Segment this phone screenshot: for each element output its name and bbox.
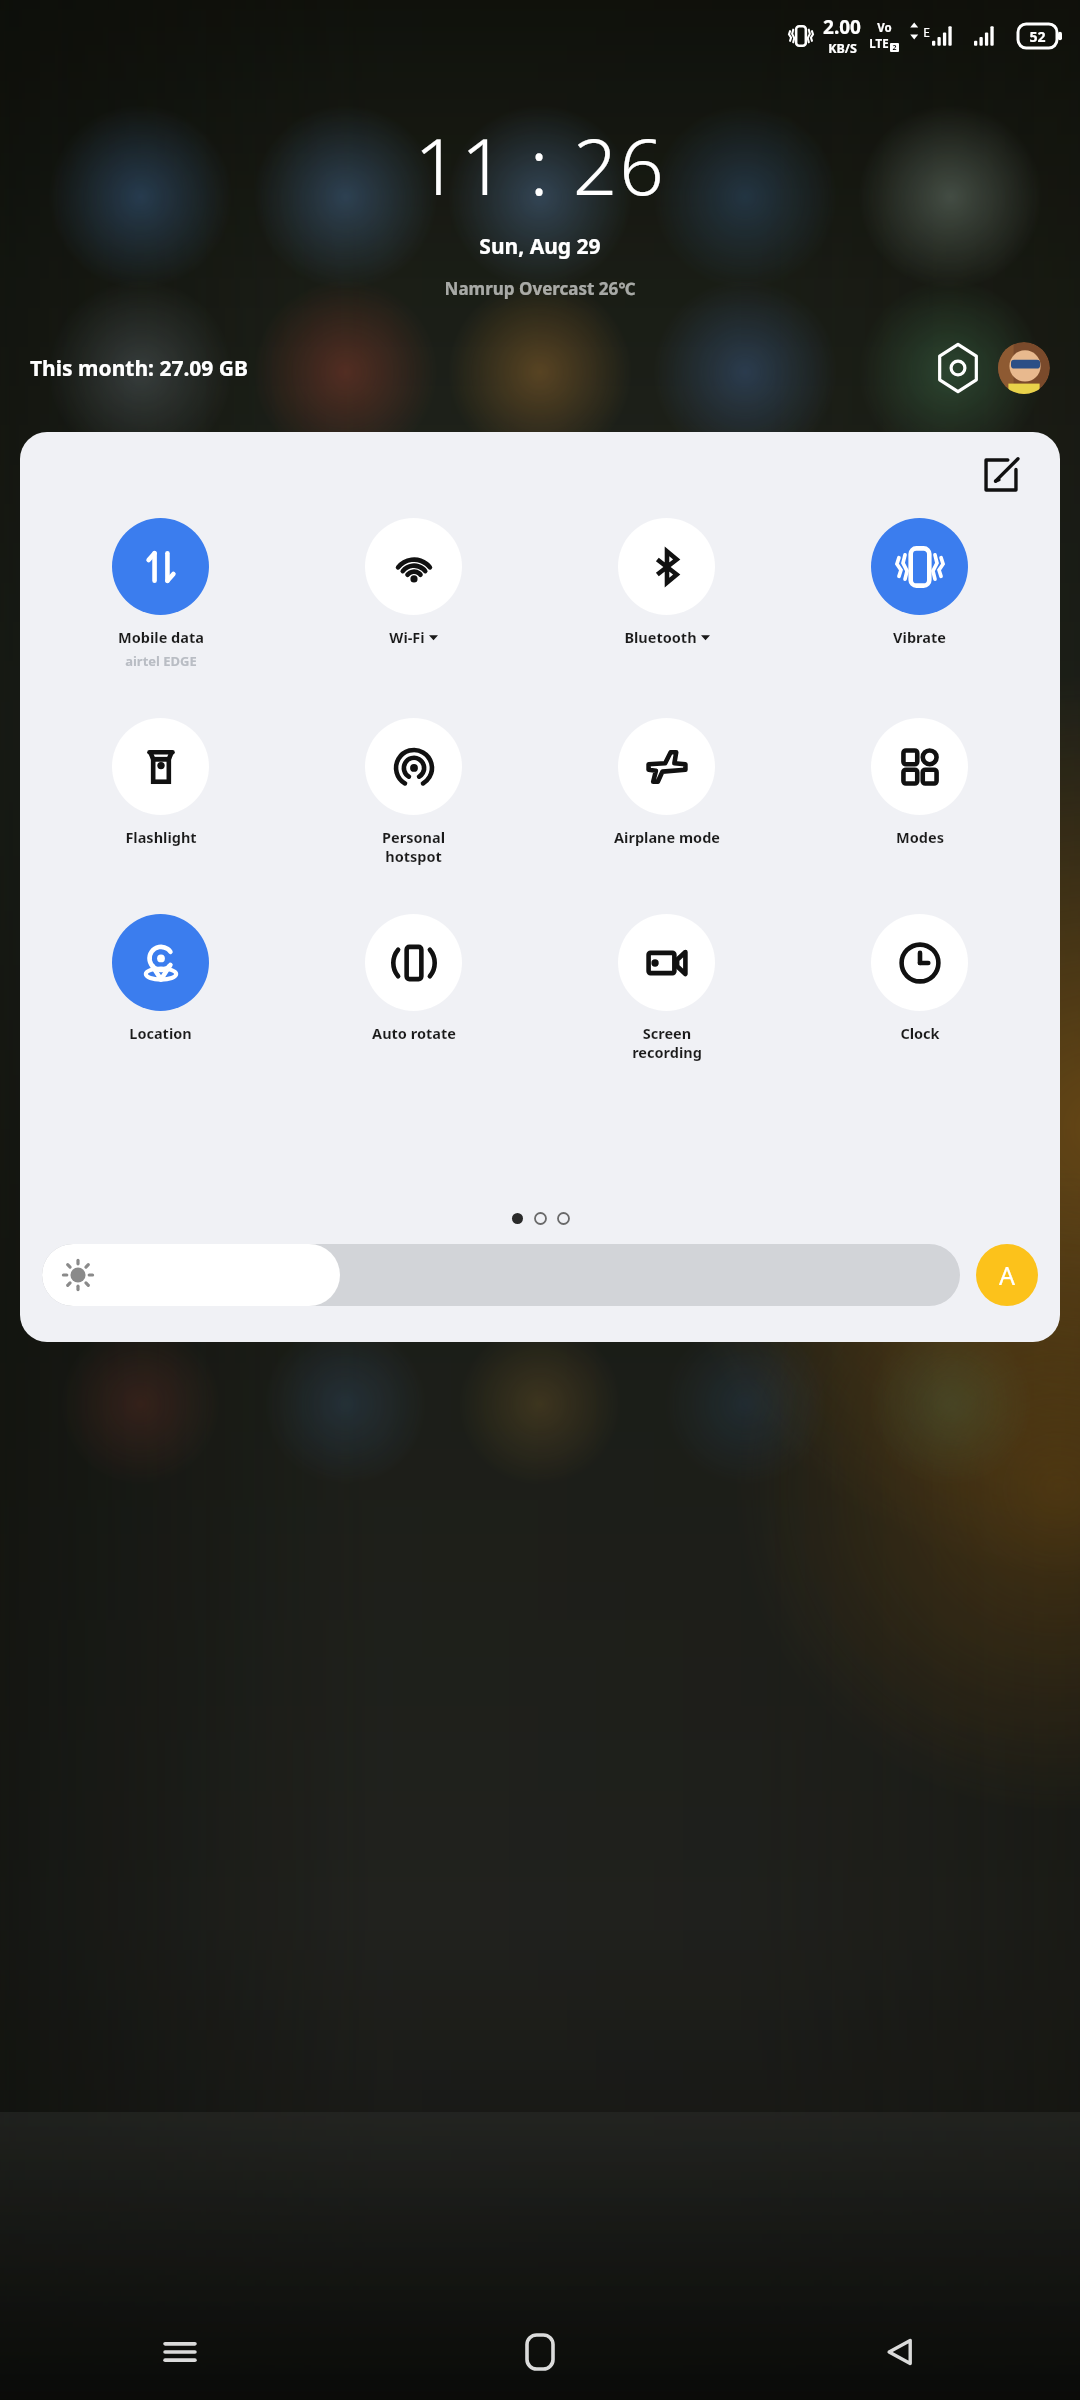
staticText: Vibrate: [893, 627, 946, 647]
button[interactable]: Auto rotate: [287, 914, 540, 1043]
staticText: LTE: [869, 36, 889, 52]
button[interactable]: Screen recording: [540, 914, 793, 1062]
button[interactable]: Brightness: [42, 1244, 960, 1306]
staticText: airtel EDGE: [125, 652, 197, 670]
button[interactable]: Settings: [932, 342, 984, 394]
staticText: 52: [1029, 27, 1046, 46]
staticText: 11 : 26: [0, 112, 1080, 218]
staticText: 2: [892, 43, 897, 52]
button[interactable]: Location: [34, 914, 287, 1043]
button[interactable]: Home: [360, 2304, 720, 2400]
staticText: Location: [129, 1023, 192, 1043]
button[interactable]: Edit quick settings: [978, 452, 1024, 498]
staticText: E: [923, 24, 930, 40]
button[interactable]: Modes: [793, 718, 1046, 847]
staticText: This month: 27.09 GB: [30, 354, 249, 383]
staticText: Namrup Overcast 26℃: [0, 277, 1080, 300]
staticText: 2.00: [823, 14, 861, 40]
button[interactable]: Airplane mode: [540, 718, 793, 847]
button[interactable]: Vibrate: [793, 518, 1046, 647]
button[interactable]: Wi-Fi: [287, 518, 540, 647]
button[interactable]: A: [976, 1244, 1038, 1306]
staticText: KB/S: [828, 40, 857, 57]
button[interactable]: Back: [720, 2304, 1080, 2400]
button[interactable]: User profile: [998, 342, 1050, 394]
button[interactable]: Personal hotspot: [287, 718, 540, 866]
staticText: Mobile data: [118, 627, 204, 647]
staticText: Clock: [900, 1023, 940, 1043]
button[interactable]: Mobile data: [34, 518, 287, 670]
staticText: Bluetooth: [624, 627, 697, 647]
staticText: A: [999, 1258, 1015, 1292]
staticText: Screen recording: [632, 1023, 702, 1062]
button[interactable]: Recent apps: [0, 2304, 360, 2400]
staticText: Airplane mode: [614, 827, 720, 847]
button[interactable]: Clock: [793, 914, 1046, 1043]
staticText: Auto rotate: [372, 1023, 456, 1043]
staticText: Vo: [877, 20, 892, 36]
staticText: Sun, Aug 29: [0, 232, 1080, 261]
button[interactable]: Flashlight: [34, 718, 287, 847]
staticText: Personal hotspot: [382, 827, 445, 866]
button[interactable]: Bluetooth: [540, 518, 793, 647]
staticText: Modes: [896, 827, 944, 847]
staticText: Flashlight: [125, 827, 197, 847]
staticText: Wi-Fi: [389, 627, 425, 647]
